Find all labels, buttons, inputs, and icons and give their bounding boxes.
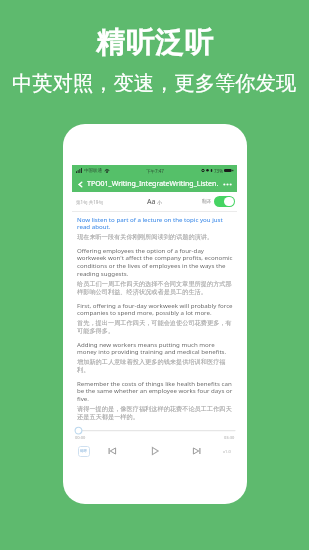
- button[interactable]: More options: [222, 179, 233, 190]
- staticText: 03:30: [224, 435, 235, 440]
- staticText: Offering employees the option of a four-…: [77, 246, 234, 278]
- staticText: Remember the costs of things like health…: [77, 379, 234, 403]
- staticText: TPO01_Writing_IntegrateWriting_Listen...: [87, 179, 220, 189]
- staticText: 小: [157, 199, 162, 205]
- staticText: Now listen to part of a lecture on the t…: [77, 215, 234, 231]
- button[interactable]: Back: [75, 179, 86, 190]
- staticText: 中英对照，变速，更多等你发现: [12, 70, 297, 96]
- button[interactable]: Previous: [106, 445, 118, 457]
- staticText: 第1句 共19句: [76, 199, 103, 205]
- staticText: Adding new workers means putting much mo…: [77, 340, 234, 356]
- staticText: 请得一提的是，像医疗福利这样的花费不论员工工作四天还是五天都是一样的。: [77, 405, 234, 421]
- button[interactable]: Loop mode: [78, 446, 90, 457]
- staticText: 精听泛听: [96, 25, 214, 61]
- staticText: 给员工们一周工作四天的选择不合同文章里所提的方式那样影响公司利益、经济状况或者是…: [77, 280, 234, 296]
- staticText: 首先，提出一周工作四天，可能会迫使公司花费更多，有可能多得多。: [77, 319, 234, 335]
- staticText: 循环: [80, 449, 88, 454]
- staticText: 增加新的工人意味着投入更多的钱来提供培训和医疗福利。: [77, 358, 234, 374]
- staticText: 73%: [214, 168, 223, 174]
- staticText: Aa: [147, 197, 156, 207]
- button[interactable]: Toggle translation: [214, 196, 235, 207]
- staticText: First, offering a four-day workweek will…: [77, 301, 234, 317]
- staticText: 下午7:47: [146, 168, 164, 174]
- button[interactable]: Playback speed: [221, 446, 233, 457]
- staticText: 中国联通: [84, 168, 102, 174]
- staticText: 翻译: [202, 199, 211, 205]
- button[interactable]: Next: [191, 445, 203, 457]
- staticText: 现在来听一段有关你刚刚所阅读到的话题的演讲。: [77, 233, 214, 241]
- staticText: 00:00: [75, 435, 86, 440]
- staticText: x1.0: [223, 449, 231, 454]
- button[interactable]: Play: [148, 444, 162, 458]
